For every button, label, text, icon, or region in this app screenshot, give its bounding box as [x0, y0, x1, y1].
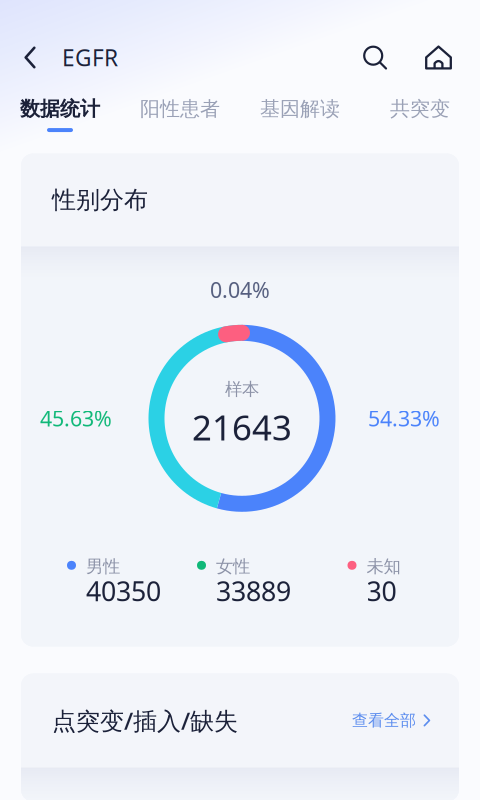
staticText: 女性	[216, 556, 250, 577]
staticText: 共突变	[390, 96, 450, 121]
button[interactable]: 基因解读	[240, 85, 360, 153]
button[interactable]: EGFR	[0, 32, 134, 82]
staticText: 40350	[86, 573, 161, 608]
staticText: 样本	[225, 379, 259, 400]
staticText: 阳性患者	[140, 96, 220, 121]
staticText: EGFR	[62, 42, 118, 72]
staticText: 0.04%	[210, 275, 270, 304]
staticText: 54.33%	[368, 404, 440, 432]
button[interactable]: 共突变	[360, 85, 480, 153]
staticText: 性别分布	[52, 185, 148, 215]
button[interactable]: Search	[350, 32, 400, 82]
staticText: 点突变/插入/缺失	[52, 705, 238, 736]
staticText: 基因解读	[260, 96, 340, 121]
staticText: 21643	[192, 404, 292, 450]
button[interactable]: 阳性患者	[120, 85, 240, 153]
staticText: 未知	[366, 556, 400, 577]
staticText: 数据统计	[20, 96, 100, 121]
staticText: 男性	[86, 556, 120, 577]
button[interactable]: Home	[412, 32, 465, 83]
staticText: 45.63%	[40, 404, 112, 432]
button[interactable]: 数据统计	[0, 85, 120, 153]
staticText: 查看全部	[352, 711, 416, 730]
staticText: 33889	[216, 573, 291, 608]
staticText: 30	[366, 573, 396, 608]
button[interactable]: 点突变/插入/缺失	[21, 673, 459, 800]
